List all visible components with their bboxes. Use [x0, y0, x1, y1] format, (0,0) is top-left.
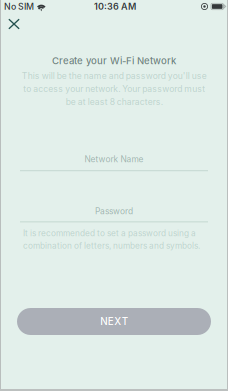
button[interactable]: Password	[0, 200, 228, 222]
button[interactable]: Close	[3, 15, 25, 33]
staticText: No SIM	[4, 1, 34, 12]
staticText: NEXT	[100, 315, 128, 327]
staticText: Network Name	[84, 154, 143, 164]
staticText: 10:36 AM	[94, 1, 136, 12]
staticText: This will be the name and password you'l…	[21, 71, 206, 107]
staticText: It is recommended to set a password usin…	[23, 228, 200, 251]
button[interactable]: Network Name	[0, 148, 228, 171]
staticText: Create your Wi-Fi Network	[52, 55, 176, 67]
button[interactable]: NEXT	[17, 308, 211, 335]
staticText: Password	[95, 206, 133, 216]
